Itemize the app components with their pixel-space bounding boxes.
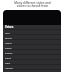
staticText: Dawn <box>5 46 12 49</box>
button[interactable]: Glen <box>5 60 61 64</box>
staticText: Ember <box>5 51 13 54</box>
button[interactable]: Dawn <box>5 45 61 49</box>
staticText: Cedar <box>5 41 12 44</box>
staticText: Voices <box>5 25 14 29</box>
staticText: Many different styles and voices to choo… <box>14 1 51 8</box>
button[interactable]: Cedar <box>5 40 61 44</box>
staticText: Harbor <box>5 66 14 69</box>
button[interactable]: Aria <box>5 30 61 34</box>
button[interactable]: Voices <box>5 25 61 29</box>
staticText: Glen <box>5 61 11 64</box>
button[interactable]: Brook <box>5 35 61 39</box>
staticText: Aria <box>5 31 10 34</box>
staticText: Fable <box>5 56 12 59</box>
button[interactable]: Ember <box>5 50 61 54</box>
staticText: Brook <box>5 36 12 39</box>
button[interactable]: Fable <box>5 55 61 59</box>
button[interactable]: Harbor <box>5 65 61 69</box>
